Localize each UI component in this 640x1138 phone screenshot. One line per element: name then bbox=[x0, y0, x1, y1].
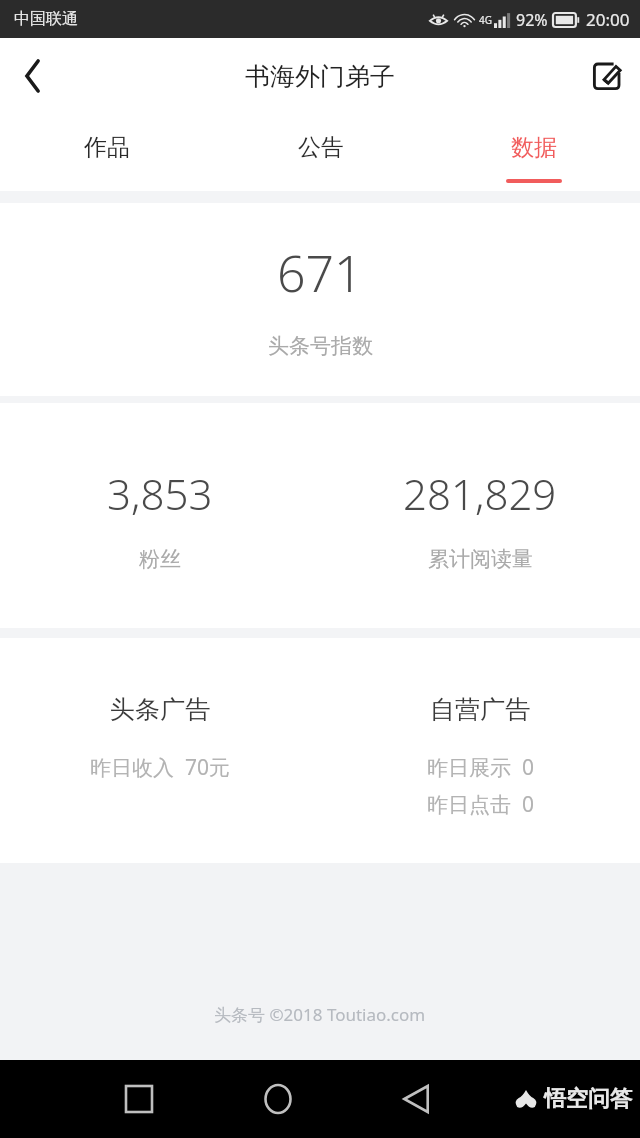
button[interactable]: 281,829 bbox=[320, 403, 640, 628]
staticText: 中国联通 bbox=[14, 9, 78, 29]
staticText: 作品 bbox=[84, 133, 130, 162]
button[interactable]: Back bbox=[0, 43, 66, 109]
button[interactable]: 数据 bbox=[427, 114, 640, 191]
staticText: 671 bbox=[277, 239, 363, 307]
button[interactable]: 公告 bbox=[214, 114, 427, 191]
staticText: 20:00 bbox=[586, 8, 630, 31]
button[interactable]: Edit bbox=[574, 43, 640, 109]
staticText: 昨日点击 0 bbox=[427, 790, 534, 819]
staticText: 书海外门弟子 bbox=[245, 61, 395, 92]
staticText: 悟空问答 bbox=[544, 1085, 632, 1113]
staticText: 昨日收入 70元 bbox=[90, 753, 230, 782]
staticText: 公告 bbox=[298, 133, 344, 162]
staticText: 昨日展示 0 bbox=[427, 753, 534, 782]
staticText: 头条号指数 bbox=[268, 333, 373, 359]
button[interactable]: 头条广告 bbox=[0, 638, 320, 863]
staticText: 3,853 bbox=[107, 465, 213, 522]
staticText: 累计阅读量 bbox=[428, 546, 533, 572]
staticText: 粉丝 bbox=[139, 546, 181, 572]
button[interactable]: Back bbox=[387, 1070, 445, 1128]
staticText: 281,829 bbox=[403, 465, 557, 522]
staticText: 92% bbox=[516, 9, 548, 31]
button[interactable]: 3,853 bbox=[0, 403, 320, 628]
staticText: 自营广告 bbox=[430, 694, 530, 725]
button[interactable]: Recents bbox=[110, 1070, 168, 1128]
staticText: 4G bbox=[479, 13, 492, 27]
staticText: 头条号 ©2018 Toutiao.com bbox=[214, 1003, 426, 1026]
button[interactable]: 作品 bbox=[0, 114, 214, 191]
button[interactable]: 自营广告 bbox=[320, 638, 640, 863]
staticText: 数据 bbox=[511, 133, 557, 162]
button[interactable]: Home bbox=[249, 1070, 307, 1128]
staticText: 头条广告 bbox=[110, 694, 210, 725]
